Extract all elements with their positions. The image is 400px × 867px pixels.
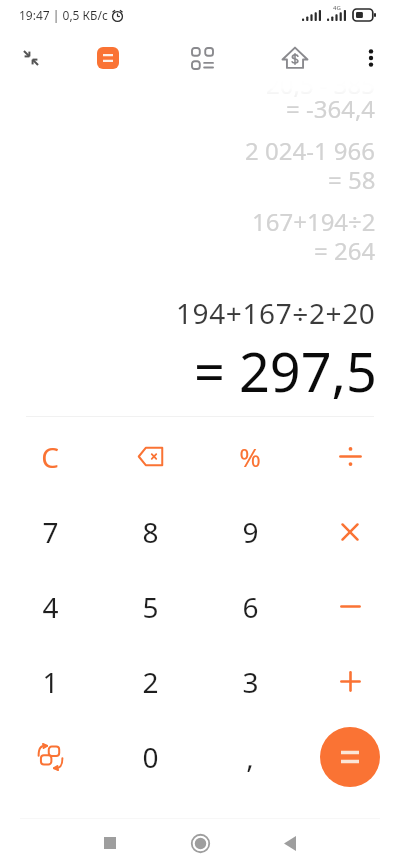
button[interactable]: 3	[200, 644, 300, 719]
staticText: %	[239, 439, 261, 474]
staticText: 167+194÷2	[252, 205, 376, 238]
button[interactable]: History entry	[0, 128, 400, 186]
staticText: 4	[42, 588, 59, 626]
staticText: 6	[242, 588, 259, 626]
button[interactable]: Collapse	[9, 36, 53, 80]
button[interactable]: 1	[0, 644, 100, 719]
button[interactable]: History entry	[0, 62, 400, 120]
staticText: = 58	[328, 163, 376, 196]
staticText: 4G	[333, 4, 341, 12]
staticText: 194+167÷2+20	[176, 294, 376, 332]
button[interactable]: More options	[349, 36, 393, 80]
button[interactable]: 5	[100, 569, 200, 644]
button[interactable]: %	[200, 419, 300, 494]
button[interactable]: ,	[200, 719, 300, 794]
staticText: 2 024-1 966	[245, 134, 376, 167]
button[interactable]: Equals	[320, 727, 380, 787]
button[interactable]: 9	[200, 494, 300, 569]
button[interactable]: Backspace	[100, 419, 200, 494]
staticText: 2	[142, 663, 159, 701]
button[interactable]: Converter	[180, 36, 224, 80]
staticText: C	[41, 438, 59, 476]
staticText: ,	[246, 738, 254, 776]
button[interactable]: 6	[200, 569, 300, 644]
button[interactable]: 2	[100, 644, 200, 719]
button[interactable]: 8	[100, 494, 200, 569]
button[interactable]: History entry	[0, 199, 400, 257]
button[interactable]: Mortgage	[273, 36, 317, 80]
staticText: 8	[142, 513, 159, 551]
button[interactable]: Minus	[300, 569, 400, 644]
staticText: = 297,5	[194, 334, 377, 408]
button[interactable]: Divide	[300, 419, 400, 494]
staticText: 19:47 | 0,5 КБ/c	[19, 7, 108, 23]
staticText: 0	[142, 738, 159, 776]
staticText: 3	[242, 663, 259, 701]
button[interactable]: Plus	[300, 644, 400, 719]
staticText: 7	[42, 513, 59, 551]
staticText: = -364,4	[286, 92, 376, 125]
staticText: 5	[142, 588, 159, 626]
button[interactable]: Convert	[0, 719, 100, 794]
button[interactable]: 7	[0, 494, 100, 569]
staticText: 9	[242, 513, 259, 551]
staticText: = 264	[314, 234, 376, 267]
staticText: 1	[42, 663, 59, 701]
button[interactable]: C	[0, 419, 100, 494]
button[interactable]: Home	[176, 819, 224, 867]
staticText: 20,5 - 385	[266, 68, 376, 101]
button[interactable]: Recents	[86, 819, 134, 867]
button[interactable]: Back	[266, 819, 314, 867]
button[interactable]: 4	[0, 569, 100, 644]
button[interactable]: Multiply	[300, 494, 400, 569]
button[interactable]: 0	[100, 719, 200, 794]
button[interactable]: Calculator	[86, 36, 130, 80]
